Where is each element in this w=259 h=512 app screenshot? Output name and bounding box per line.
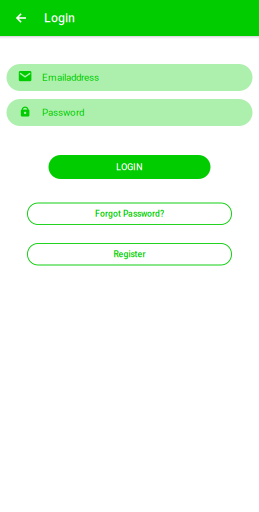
button[interactable]: Register	[27, 243, 231, 265]
button[interactable]: LOGIN	[48, 155, 210, 179]
staticText: Forgot Password?	[95, 209, 164, 219]
staticText: Register	[113, 249, 145, 259]
button[interactable]: Password	[6, 99, 252, 126]
staticText: Login	[44, 11, 75, 25]
staticText: LOGIN	[116, 161, 143, 172]
button[interactable]: Forgot Password?	[27, 203, 231, 224]
staticText: Password	[42, 107, 84, 118]
staticText: Emailaddress	[42, 72, 99, 83]
button[interactable]: Emailaddress	[6, 64, 252, 91]
button[interactable]: Back	[0, 0, 36, 36]
